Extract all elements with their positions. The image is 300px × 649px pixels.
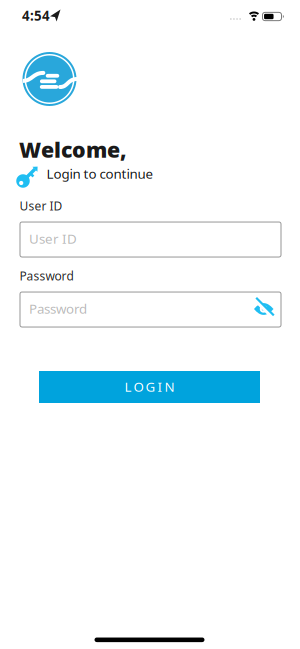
staticText: User ID [29, 230, 77, 247]
staticText: L O G I N [124, 378, 174, 395]
staticText: Password [19, 268, 73, 284]
staticText: User ID [19, 198, 62, 214]
staticText: Welcome, [19, 135, 127, 164]
staticText: 4:54 [22, 7, 50, 24]
staticText: Login to continue [46, 165, 153, 182]
staticText: Password [29, 300, 87, 317]
